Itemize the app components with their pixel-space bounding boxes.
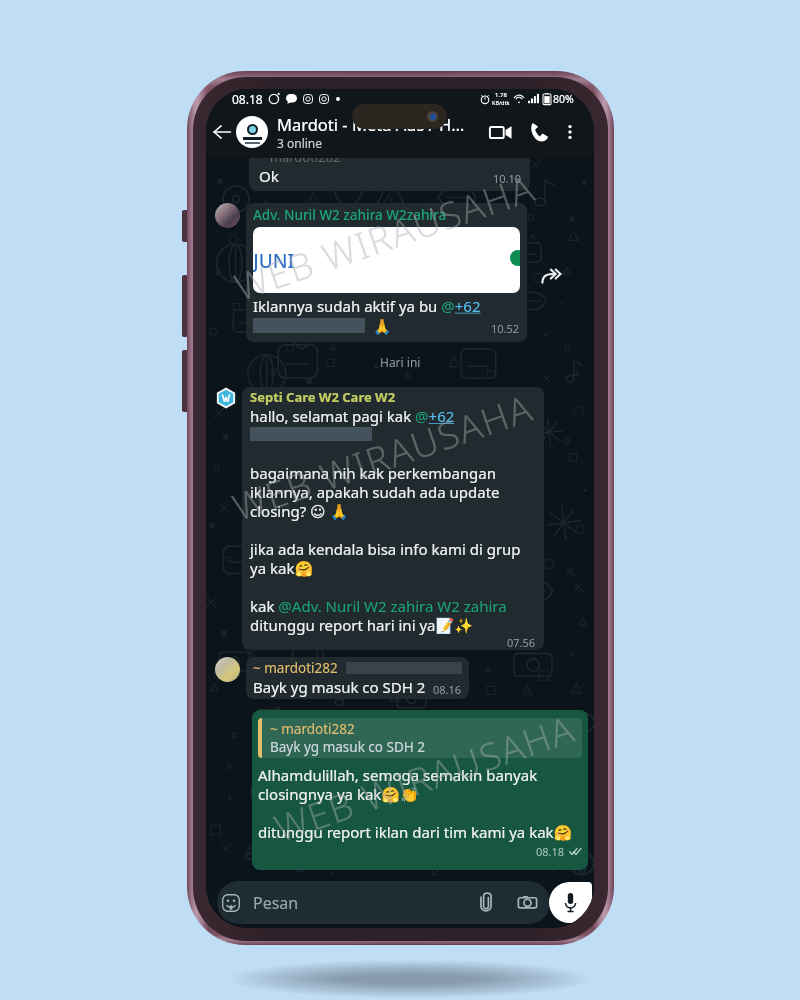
staticText: 08.18 — [536, 844, 565, 859]
staticText: Alhamdulillah, semoga semakin banyak clo… — [258, 765, 573, 842]
staticText: WEB WIRAUSAHA — [227, 161, 541, 311]
staticText: Septi Care W2 Care W2 — [250, 388, 396, 406]
staticText: ~ mardoti282 — [270, 720, 355, 738]
staticText: Ok — [259, 166, 279, 186]
staticText: 07.56 — [507, 635, 536, 650]
staticText: Mardoti - Meta Ads / H… — [277, 113, 465, 135]
button[interactable]: Back — [209, 119, 235, 145]
staticText: 08.16 — [433, 682, 462, 697]
staticText: 3 online — [277, 135, 323, 151]
staticText: KB/dtk — [492, 99, 510, 106]
staticText: 10.52 — [491, 321, 520, 336]
staticText: Bayk yg masuk co SDH 2 — [270, 738, 426, 756]
staticText: Pesan — [253, 892, 299, 914]
staticText: /JUNI — [253, 248, 295, 274]
staticText: 08.18 — [232, 91, 263, 106]
staticText: Iklannya sudah aktif ya bu @+62 — [253, 296, 481, 316]
button[interactable]: More options — [558, 120, 582, 144]
staticText: hallo, selamat pagi kak @+62 257 4470 11… — [250, 406, 521, 635]
button[interactable]: Pesan — [217, 881, 550, 924]
staticText: 10.10 — [493, 171, 522, 186]
staticText: Adv. Nuril W2 zahira W2zahira — [253, 206, 447, 224]
staticText: ~ mardoti282 — [253, 659, 338, 677]
button[interactable]: Voice call — [523, 116, 555, 148]
staticText: 80% — [553, 92, 574, 106]
staticText: WEB WIRAUSAHA — [267, 702, 581, 852]
staticText: WEB WIRAUSAHA — [225, 381, 539, 531]
button[interactable]: Video call — [483, 115, 517, 149]
staticText: Hari ini — [380, 354, 421, 370]
button[interactable]: Voice message — [549, 882, 592, 923]
staticText: 1.78 — [495, 91, 507, 99]
staticText: Bayk yg masuk co SDH 2 — [253, 677, 426, 697]
staticText: 🙏 — [365, 316, 392, 336]
staticText: ~ mardoti282 — [259, 158, 341, 166]
